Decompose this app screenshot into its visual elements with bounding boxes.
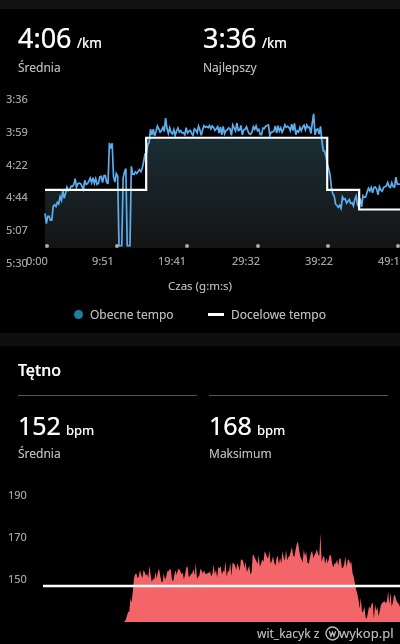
staticText: 168 (209, 408, 252, 442)
staticText: 19:41 (158, 253, 187, 268)
staticText: Najlepszy (203, 59, 257, 75)
button[interactable]: Obecne tempo (70, 304, 178, 324)
button[interactable]: 3:36 (203, 19, 388, 75)
staticText: 190 (8, 487, 27, 502)
staticText: 0:00 (26, 253, 48, 268)
staticText: Docelowe tempo (231, 306, 326, 322)
staticText: Średnia (18, 59, 61, 75)
staticText: Maksimum (209, 445, 272, 461)
staticText: 3:36 (6, 91, 28, 106)
staticText: Obecne tempo (90, 306, 174, 322)
staticText: 170 (8, 529, 27, 544)
staticText: wit_kacyk z (257, 625, 320, 641)
button[interactable]: 4:06 (18, 19, 203, 75)
button[interactable]: 168 (209, 395, 388, 461)
staticText: 3:36 (203, 19, 257, 56)
other: wykop logo (326, 627, 339, 640)
staticText: Średnia (18, 445, 61, 461)
staticText: Czas (g:m:s) (0, 278, 400, 294)
button[interactable]: Docelowe tempo (204, 304, 330, 324)
staticText: wykop.pl (339, 624, 394, 642)
staticText: 5:07 (6, 222, 28, 237)
staticText: /km (77, 34, 102, 52)
staticText: 4:22 (6, 157, 28, 172)
staticText: 5:30 (6, 255, 28, 270)
staticText: bpm (66, 421, 95, 439)
staticText: 150 (8, 571, 27, 586)
staticText: 49:1 (378, 253, 400, 268)
staticText: 152 (18, 408, 61, 442)
staticText: 3:59 (6, 124, 28, 139)
staticText: 4:44 (6, 189, 28, 204)
staticText: Tętno (18, 359, 61, 381)
staticText: 9:51 (92, 253, 114, 268)
staticText: bpm (257, 421, 286, 439)
staticText: 39:22 (305, 253, 334, 268)
staticText: 4:06 (18, 19, 72, 56)
staticText: 29:32 (232, 253, 261, 268)
button[interactable]: 152 (18, 395, 197, 461)
staticText: /km (262, 34, 287, 52)
